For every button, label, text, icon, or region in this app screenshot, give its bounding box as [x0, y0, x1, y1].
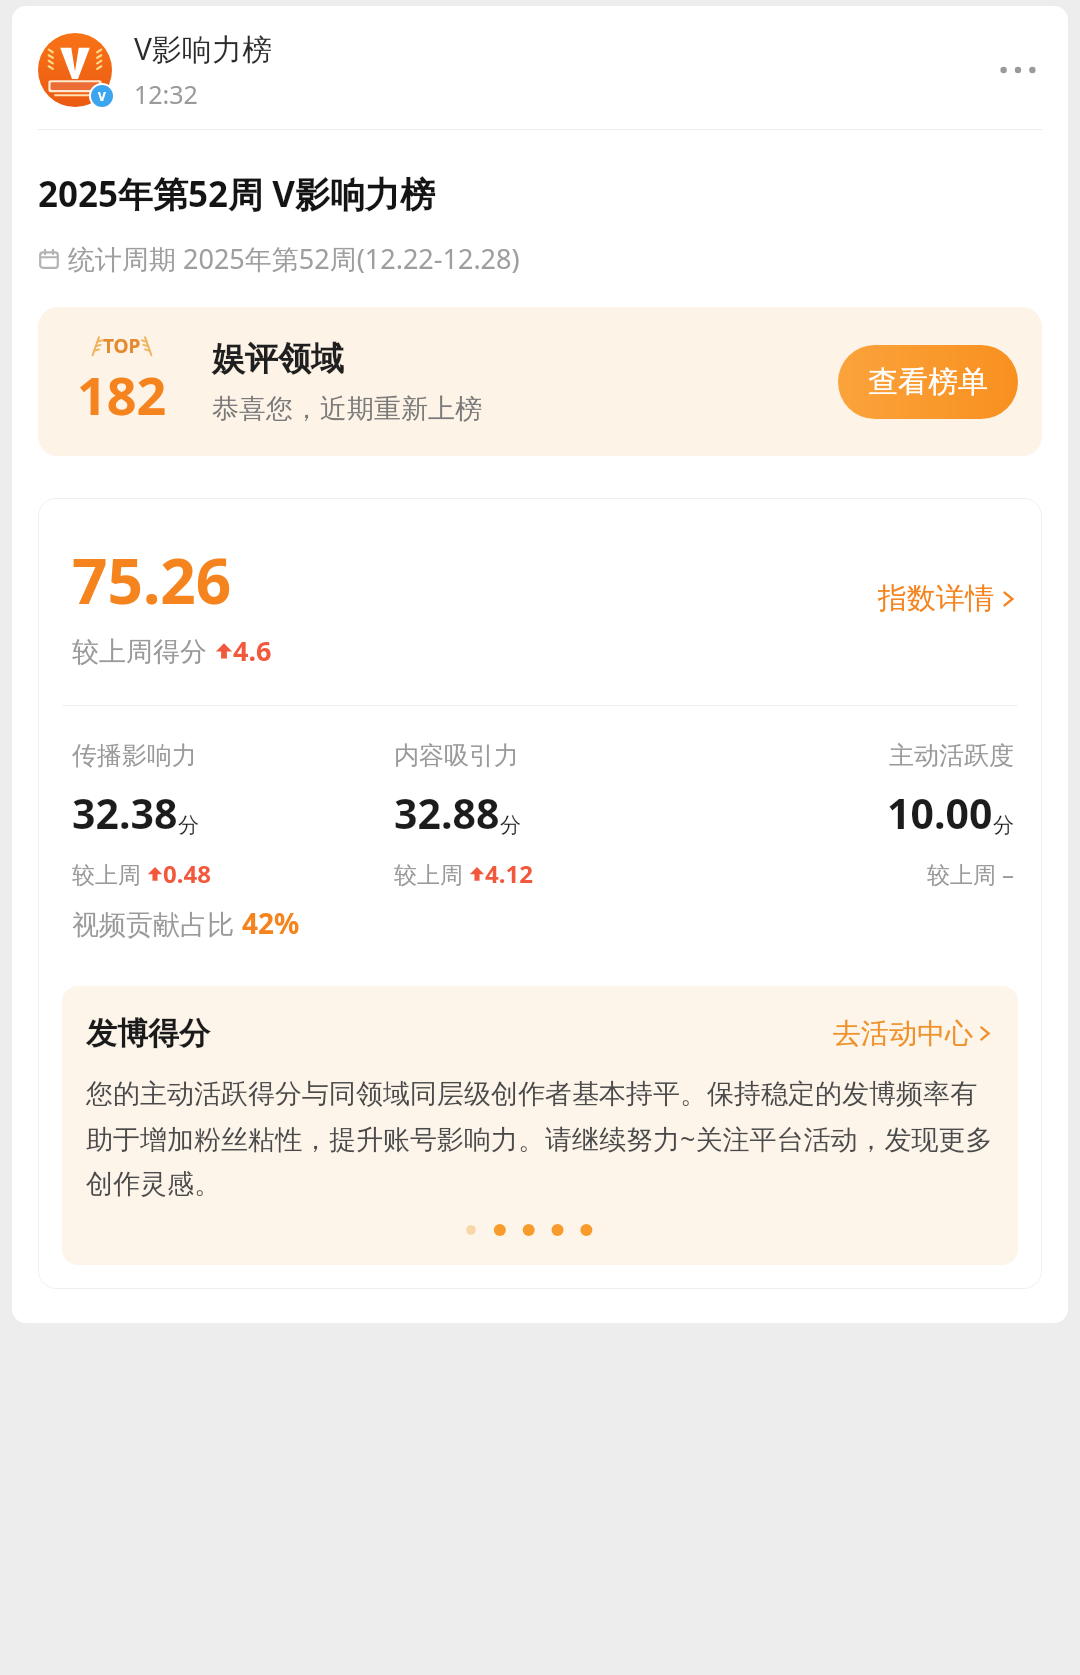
staticText: –: [1002, 857, 1014, 890]
staticText: 75.26: [72, 538, 232, 622]
staticText: 12:32: [134, 77, 198, 111]
button[interactable]: V影响力榜: [134, 28, 990, 111]
staticText: 较上周得分: [72, 632, 215, 669]
button[interactable]: 去活动中心: [833, 1016, 994, 1051]
staticText: V: [98, 88, 106, 104]
staticText: V影响力榜: [134, 28, 272, 69]
staticText: 去活动中心: [833, 1016, 973, 1051]
staticText: 发博得分: [86, 1014, 833, 1053]
staticText: 10.00: [887, 785, 993, 841]
staticText: 42%: [242, 904, 300, 942]
staticText: 182: [77, 359, 167, 430]
staticText: 娱评领域: [212, 338, 344, 380]
staticText: 视频贡献占比: [72, 905, 242, 942]
staticText: 4.12: [485, 857, 533, 890]
staticText: 恭喜您，近期重新上榜: [212, 392, 482, 426]
staticText: 您的主动活跃得分与同领域同层级创作者基本持平。保持稳定的发博频率有助于增加粉丝粘…: [86, 1077, 994, 1201]
staticText: 较上周: [72, 858, 147, 889]
button[interactable]: 查看榜单: [838, 345, 1018, 419]
staticText: 主动活跃度: [889, 740, 1014, 771]
staticText: 分: [500, 812, 521, 838]
staticText: 较上周: [394, 858, 469, 889]
button[interactable]: TOP: [38, 307, 1042, 456]
staticText: 分: [993, 812, 1014, 838]
staticText: 分: [178, 812, 199, 838]
button[interactable]: 发博得分: [62, 986, 1018, 1265]
staticText: 内容吸引力: [394, 740, 519, 771]
staticText: 传播影响力: [72, 740, 197, 771]
staticText: 指数详情: [878, 580, 994, 617]
button[interactable]: V: [38, 33, 112, 107]
staticText: 较上周: [927, 858, 1002, 889]
staticText: 统计周期 2025年第52周(12.22-12.28): [68, 240, 520, 277]
staticText: 查看榜单: [868, 363, 988, 401]
staticText: 32.38: [72, 785, 178, 841]
staticText: 32.88: [394, 785, 500, 841]
staticText: 4.6: [233, 632, 272, 669]
button[interactable]: More options: [990, 42, 1046, 98]
staticText: 2025年第52周 V影响力榜: [38, 170, 435, 218]
staticText: 0.48: [163, 857, 211, 890]
button[interactable]: 指数详情: [878, 580, 1018, 617]
staticText: TOP: [103, 333, 141, 359]
